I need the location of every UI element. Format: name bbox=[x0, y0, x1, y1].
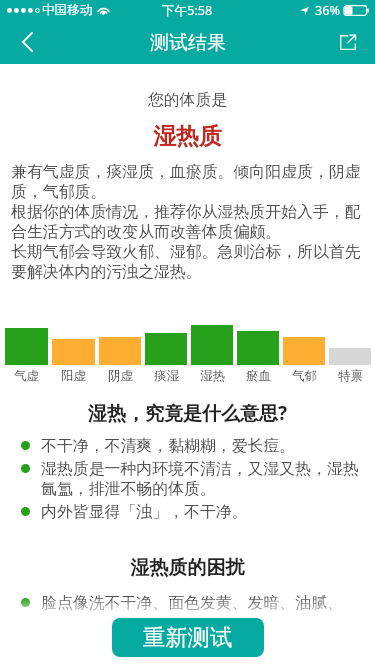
button[interactable]: 重新测试 bbox=[112, 618, 264, 657]
staticText: 兼有气虚质，痰湿质，血瘀质。倾向阳虚质，阴虚 质，气郁质。 根据你的体质情况，推… bbox=[11, 162, 364, 282]
staticText: 测试结果 bbox=[150, 31, 226, 55]
staticText: 特禀 bbox=[338, 368, 363, 384]
staticText: 脸点像洗不干净、面色发黄、发暗、油腻、 bbox=[41, 593, 343, 613]
staticText: 湿热，究竟是什么意思? bbox=[0, 400, 375, 426]
staticText: 您的体质是 bbox=[0, 90, 375, 110]
staticText: 湿热质的困扰 bbox=[0, 556, 375, 580]
button[interactable]: Back bbox=[0, 20, 55, 64]
staticText: 中国移动 bbox=[42, 2, 93, 18]
staticText: 湿热 bbox=[200, 368, 225, 384]
staticText: 阳虚 bbox=[61, 368, 86, 384]
button[interactable]: Share bbox=[320, 20, 375, 64]
staticText: 湿热质是一种内环境不清洁，又湿又热，湿热 氤氲，排泄不畅的体质。 bbox=[41, 459, 359, 499]
staticText: 重新测试 bbox=[143, 624, 233, 652]
staticText: 痰湿 bbox=[154, 368, 179, 384]
staticText: 气郁 bbox=[292, 368, 317, 384]
staticText: 36% bbox=[315, 2, 340, 19]
staticText: 气虚 bbox=[14, 368, 39, 384]
staticText: 不干净，不清爽，黏糊糊，爱长痘。 bbox=[41, 436, 296, 456]
staticText: 瘀血 bbox=[246, 368, 271, 384]
staticText: 下午5:58 bbox=[162, 2, 213, 19]
staticText: 阴虚 bbox=[108, 368, 133, 384]
staticText: 内外皆显得「浊」，不干净。 bbox=[41, 502, 248, 522]
staticText: 湿热质 bbox=[0, 122, 375, 151]
